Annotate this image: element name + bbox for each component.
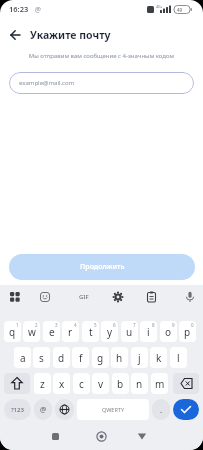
button[interactable]: x: [53, 373, 70, 394]
button[interactable]: [4, 373, 30, 394]
staticText: j: [138, 351, 141, 365]
button[interactable]: @: [34, 399, 52, 420]
staticText: 3: [55, 322, 58, 328]
button[interactable]: k: [150, 347, 167, 368]
staticText: 2: [35, 322, 38, 328]
button[interactable]: QWERTY: [77, 399, 149, 420]
staticText: s: [39, 351, 44, 365]
button[interactable]: i: [140, 321, 157, 342]
button[interactable]: p: [179, 321, 196, 342]
button[interactable]: ?123: [4, 399, 31, 420]
button[interactable]: [6, 26, 24, 44]
staticText: h: [116, 351, 123, 365]
staticText: Укажите почту: [30, 28, 111, 42]
staticText: 6: [113, 322, 116, 328]
staticText: n: [136, 377, 143, 391]
button[interactable]: q: [4, 321, 21, 342]
button[interactable]: g: [92, 347, 109, 368]
staticText: 5: [94, 322, 97, 328]
button[interactable]: w: [23, 321, 40, 342]
staticText: 16:23: [9, 4, 29, 14]
button[interactable]: r: [62, 321, 79, 342]
staticText: 9: [172, 322, 175, 328]
staticText: 4: [74, 322, 77, 328]
button[interactable]: o: [160, 321, 177, 342]
staticText: p: [184, 325, 191, 339]
staticText: m: [155, 377, 165, 391]
button[interactable]: [96, 431, 107, 442]
button[interactable]: l: [170, 347, 187, 368]
staticText: 49: [177, 7, 183, 13]
button[interactable]: n: [131, 373, 148, 394]
staticText: QWERTY: [102, 406, 125, 413]
staticText: a: [20, 351, 26, 365]
staticText: 1: [16, 322, 19, 328]
button[interactable]: y: [101, 321, 118, 342]
button[interactable]: v: [92, 373, 109, 394]
staticText: e: [49, 325, 55, 339]
staticText: k: [156, 351, 162, 365]
button[interactable]: t: [82, 321, 99, 342]
staticText: Мы отправим вам сообщение с 4-значным ко…: [0, 52, 203, 60]
button[interactable]: h: [111, 347, 128, 368]
button[interactable]: d: [53, 347, 70, 368]
staticText: i: [147, 325, 150, 339]
button[interactable]: u: [121, 321, 138, 342]
staticText: q: [9, 325, 16, 339]
button[interactable]: [55, 399, 74, 420]
staticText: d: [58, 351, 65, 365]
button[interactable]: j: [131, 347, 148, 368]
button[interactable]: .: [152, 399, 170, 420]
staticText: ?123: [11, 406, 24, 414]
staticText: t: [89, 325, 93, 339]
staticText: example@mail.com: [19, 79, 75, 87]
button[interactable]: a: [14, 347, 31, 368]
staticText: GIF: [79, 293, 89, 301]
staticText: .: [160, 404, 163, 415]
staticText: z: [40, 377, 45, 391]
staticText: u: [126, 325, 133, 339]
staticText: 4G+: [156, 4, 163, 9]
staticText: o: [165, 325, 172, 339]
staticText: y: [107, 325, 113, 339]
button[interactable]: [52, 433, 59, 440]
button[interactable]: s: [33, 347, 50, 368]
button[interactable]: f: [72, 347, 89, 368]
staticText: @: [35, 5, 41, 14]
staticText: v: [98, 377, 104, 391]
staticText: 0: [191, 322, 194, 328]
button[interactable]: c: [73, 373, 90, 394]
staticText: g: [97, 351, 104, 365]
staticText: Продолжить: [80, 262, 125, 272]
button[interactable]: m: [151, 373, 168, 394]
staticText: @: [40, 405, 47, 415]
staticText: x: [59, 377, 65, 391]
staticText: f: [79, 351, 83, 365]
staticText: w: [28, 325, 36, 339]
staticText: 7: [133, 322, 136, 328]
button[interactable]: Продолжить: [9, 254, 195, 280]
button[interactable]: z: [34, 373, 51, 394]
button[interactable]: example@mail.com: [9, 72, 194, 94]
staticText: r: [68, 325, 73, 339]
button[interactable]: e: [43, 321, 60, 342]
staticText: 8: [152, 322, 155, 328]
button[interactable]: b: [112, 373, 129, 394]
button[interactable]: [173, 399, 199, 420]
button[interactable]: [173, 373, 199, 394]
staticText: b: [117, 377, 124, 391]
button[interactable]: [137, 432, 147, 441]
staticText: l: [177, 351, 180, 365]
staticText: c: [79, 377, 84, 391]
